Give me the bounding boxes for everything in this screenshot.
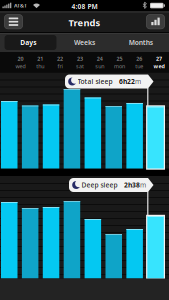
button[interactable] [64, 89, 80, 168]
staticText: 21 [37, 55, 43, 62]
button[interactable]: 21 [30, 53, 50, 72]
staticText: sat [76, 63, 84, 70]
button[interactable] [64, 201, 80, 278]
button[interactable] [126, 103, 143, 168]
button[interactable] [105, 234, 122, 278]
staticText: 26 [136, 55, 142, 62]
staticText: wed [154, 63, 165, 70]
button[interactable]: Months [113, 33, 169, 52]
button[interactable]: 24 [90, 53, 110, 72]
staticText: 23 [77, 55, 83, 62]
staticText: 25 [116, 55, 122, 62]
button[interactable] [146, 14, 165, 29]
staticText: Weeks [74, 38, 95, 47]
staticText: m [140, 181, 146, 189]
button[interactable] [1, 202, 17, 278]
button[interactable]: 23 [70, 53, 90, 72]
button[interactable] [105, 106, 122, 168]
button[interactable] [1, 101, 17, 168]
staticText: Deep sleep [81, 181, 117, 189]
button[interactable]: 25 [110, 53, 129, 72]
staticText: Months [129, 38, 153, 47]
button[interactable]: 20 [11, 53, 30, 72]
staticText: Total sleep [77, 77, 112, 86]
staticText: AT&T [14, 2, 27, 9]
staticText: sun [95, 63, 104, 70]
button[interactable]: 22 [50, 53, 70, 72]
button[interactable]: Weeks [56, 33, 113, 52]
staticText: 6h22 [119, 77, 135, 86]
button[interactable] [85, 219, 101, 278]
button[interactable] [4, 14, 23, 29]
button[interactable] [147, 216, 164, 278]
staticText: Days [20, 38, 36, 47]
staticText: 4:08 PM [71, 2, 97, 11]
button[interactable] [43, 104, 59, 168]
button[interactable]: 26 [129, 53, 149, 72]
staticText: tue [135, 63, 143, 70]
staticText: 22 [57, 55, 63, 62]
staticText: fri [58, 63, 63, 70]
button[interactable] [22, 208, 38, 278]
button[interactable]: Days [0, 33, 56, 52]
button[interactable] [43, 207, 59, 278]
staticText: 27 [156, 55, 162, 62]
button[interactable] [126, 229, 143, 278]
staticText: wed [15, 63, 25, 70]
button[interactable] [147, 106, 164, 168]
staticText: 24 [97, 55, 103, 62]
button[interactable] [85, 97, 101, 168]
staticText: mon [114, 63, 125, 70]
staticText: 2h38 [124, 181, 140, 189]
staticText: thu [36, 63, 44, 70]
staticText: m [135, 77, 141, 86]
staticText: Trends [68, 16, 100, 29]
button[interactable]: 27 [149, 53, 169, 72]
staticText: 20 [17, 55, 23, 62]
button[interactable] [22, 105, 38, 168]
